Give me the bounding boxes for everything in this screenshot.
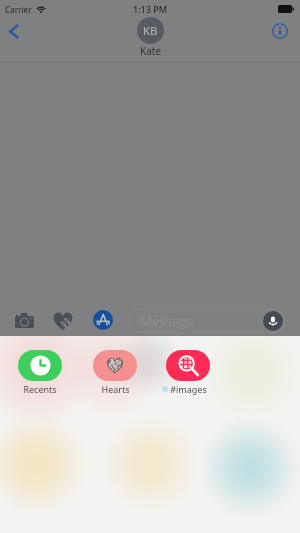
staticText: Carrier <box>5 4 32 15</box>
button[interactable]: Record audio <box>263 311 283 331</box>
staticText: #images <box>170 383 207 395</box>
button[interactable]: Back <box>2 19 26 43</box>
button[interactable]: Recents <box>18 350 62 395</box>
staticText: Recents <box>23 383 57 395</box>
staticText: KB <box>143 23 158 39</box>
button[interactable]: Details <box>268 19 292 43</box>
staticText: 1:13 PM <box>133 3 167 15</box>
button[interactable]: Apps <box>89 306 117 334</box>
button[interactable]: Hearts <box>93 350 137 395</box>
button[interactable]: iMessage <box>129 309 285 333</box>
button[interactable]: KB <box>137 17 164 58</box>
button[interactable]: #images <box>166 350 210 395</box>
button[interactable]: Camera <box>10 306 38 334</box>
staticText: Hearts <box>101 383 130 395</box>
staticText: Kate <box>140 44 162 58</box>
button[interactable]: Digital Touch <box>49 307 77 335</box>
staticText: iMessage <box>137 312 195 330</box>
